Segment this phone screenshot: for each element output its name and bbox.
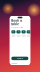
button[interactable] bbox=[16, 35, 20, 37]
staticText: Select date and time bbox=[11, 27, 23, 28]
button[interactable]: 03 bbox=[11, 30, 15, 33]
staticText: 06 bbox=[28, 31, 30, 33]
button[interactable]: 04 bbox=[16, 30, 20, 33]
staticText: 05 bbox=[23, 31, 25, 33]
button[interactable]: Confirm bbox=[11, 57, 28, 60]
staticText: 04 bbox=[17, 31, 19, 33]
button[interactable]: 06 bbox=[27, 30, 31, 33]
staticText: Confirm bbox=[17, 57, 23, 59]
button[interactable] bbox=[21, 35, 26, 37]
staticText: 03 bbox=[12, 31, 14, 33]
button[interactable] bbox=[27, 35, 31, 37]
button[interactable]: 05 bbox=[21, 30, 26, 33]
button[interactable] bbox=[11, 35, 15, 37]
staticText: Book a table bbox=[11, 19, 22, 26]
